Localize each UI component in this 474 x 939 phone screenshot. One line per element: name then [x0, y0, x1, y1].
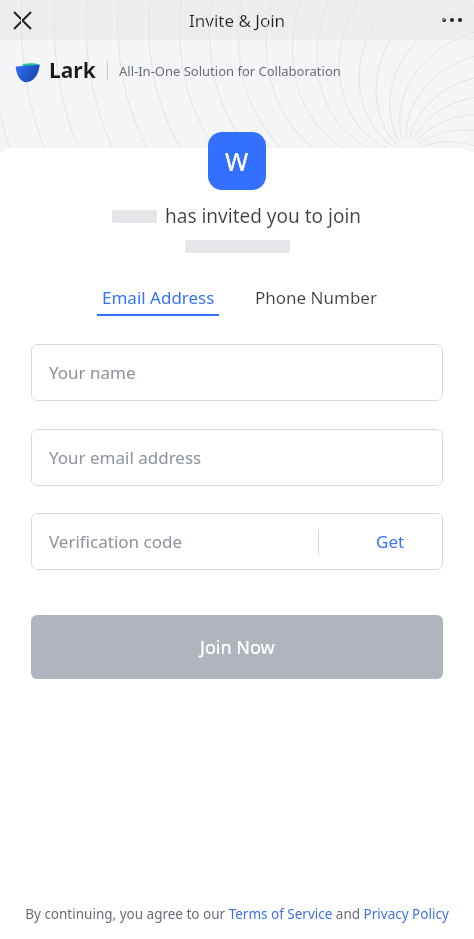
- staticText: Your name: [49, 361, 136, 384]
- staticText: Phone Number: [255, 286, 377, 309]
- button[interactable]: Join Now: [31, 615, 443, 679]
- button[interactable]: Your email address: [31, 429, 443, 486]
- staticText: Email Address: [102, 286, 215, 309]
- staticText: Lark: [49, 56, 96, 85]
- staticText: Get: [376, 530, 405, 553]
- button[interactable]: Close: [0, 0, 44, 40]
- button[interactable]: More options: [430, 0, 474, 40]
- button[interactable]: Your name: [31, 344, 443, 401]
- staticText: W: [225, 144, 249, 178]
- button[interactable]: Get: [318, 513, 443, 570]
- staticText: Verification code: [49, 530, 183, 553]
- staticText: All-In-One Solution for Collaboration: [119, 62, 341, 80]
- button[interactable]: Email Address: [97, 286, 219, 316]
- staticText: Your email address: [49, 446, 202, 469]
- staticText: has invited you to join: [165, 203, 362, 229]
- staticText: Invite & Join: [189, 9, 286, 32]
- button[interactable]: Phone Number: [255, 286, 377, 309]
- staticText: By continuing, you agree to our Terms of…: [24, 905, 450, 923]
- staticText: Join Now: [200, 635, 275, 660]
